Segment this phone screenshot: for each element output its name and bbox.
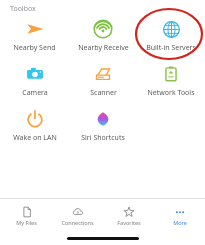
- staticText: Scanner: [90, 88, 117, 98]
- staticText: Toolbox: [10, 4, 36, 14]
- staticText: Built-in Servers: [146, 43, 196, 53]
- staticText: Siri Shortcuts: [81, 133, 125, 143]
- button[interactable]: Camera: [0, 61, 69, 100]
- button[interactable]: Favorites: [103, 199, 154, 231]
- staticText: Connections: [61, 219, 94, 226]
- staticText: Nearby Receive: [78, 43, 129, 53]
- staticText: Network Tools: [147, 88, 195, 98]
- staticText: More: [173, 219, 187, 226]
- button[interactable]: Nearby Receive: [69, 16, 137, 55]
- button[interactable]: Scanner: [69, 61, 137, 100]
- staticText: Wake on LAN: [13, 133, 57, 143]
- staticText: Nearby Send: [13, 43, 56, 53]
- button[interactable]: Nearby Send: [0, 16, 69, 55]
- button[interactable]: Connections: [52, 199, 103, 231]
- staticText: Favorites: [117, 219, 141, 226]
- button[interactable]: More: [154, 199, 205, 231]
- staticText: My Files: [16, 219, 37, 226]
- button[interactable]: Network Tools: [137, 61, 205, 100]
- button[interactable]: Built-in Servers: [137, 16, 205, 55]
- button[interactable]: Wake on LAN: [0, 106, 69, 145]
- button[interactable]: Siri Shortcuts: [69, 106, 137, 145]
- button[interactable]: My Files: [0, 199, 52, 231]
- staticText: Camera: [22, 88, 48, 98]
